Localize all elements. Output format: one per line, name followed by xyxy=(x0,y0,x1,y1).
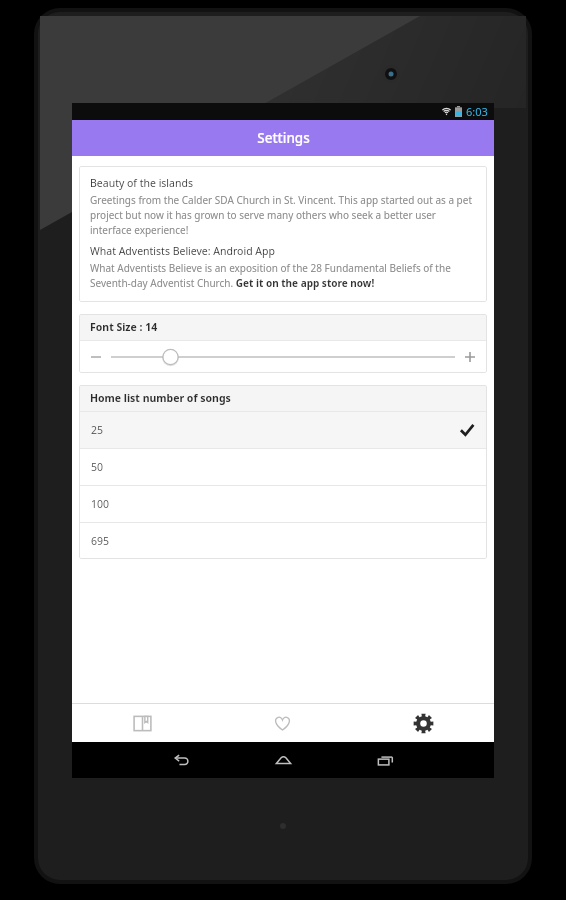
button[interactable]: Beauty of the islands xyxy=(79,166,487,302)
button[interactable]: 695 xyxy=(79,523,487,559)
staticText: What Adventists Believe: Android App xyxy=(90,244,275,258)
button[interactable]: 25 xyxy=(79,412,487,448)
button[interactable]: Home xyxy=(268,745,298,775)
button[interactable]: Decrease font size xyxy=(79,341,487,373)
staticText: 100 xyxy=(91,497,110,511)
button[interactable]: Settings xyxy=(353,704,494,742)
button[interactable]: 50 xyxy=(79,449,487,485)
button[interactable]: 100 xyxy=(79,486,487,522)
staticText: 25 xyxy=(91,423,104,437)
staticText: Greetings from the Calder SDA Church in … xyxy=(90,193,476,237)
other: Increase font size xyxy=(463,350,477,364)
button[interactable]: Back xyxy=(166,745,196,775)
button[interactable]: Hymnal xyxy=(72,704,212,742)
staticText: Font Size : 14 xyxy=(90,320,158,334)
staticText: 6:03 xyxy=(466,104,488,119)
staticText: Beauty of the islands xyxy=(90,176,193,190)
staticText: 695 xyxy=(91,534,110,548)
staticText: 50 xyxy=(91,460,104,474)
button[interactable]: Recent apps xyxy=(370,745,400,775)
button[interactable]: Home list number of songs xyxy=(79,385,487,411)
staticText: Settings xyxy=(257,129,310,147)
button[interactable]: Favorites xyxy=(212,704,353,742)
button[interactable]: Font Size : 14 xyxy=(79,314,487,340)
staticText: Home list number of songs xyxy=(90,391,231,405)
staticText: What Adventists Believe is an exposition… xyxy=(90,261,476,290)
other: Decrease font size xyxy=(89,350,103,364)
